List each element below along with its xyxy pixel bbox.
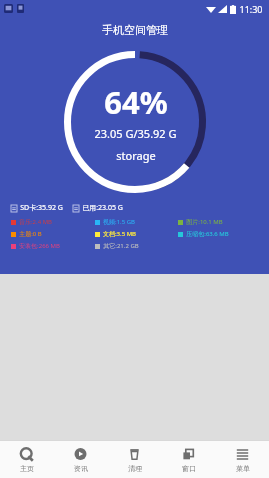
button[interactable]: 窗口 [161,441,215,478]
staticText: storage [116,148,156,163]
staticText: 图片:10.1 MB [186,218,223,226]
staticText: 压缩包:63.6 MB [186,230,229,238]
staticText: 音乐:2.4 MB [19,218,52,226]
staticText: 23.05 G/35.92 G [94,126,177,141]
staticText: 资讯 [74,464,88,473]
staticText: 菜单 [236,464,250,473]
staticText: 已用:23.05 G [82,203,123,213]
staticText: 安装包:266 MB [19,242,60,250]
staticText: 文档:3.5 MB [103,230,136,238]
staticText: 主题:0 B [19,230,42,238]
button[interactable]: 清理 [107,441,161,478]
staticText: 主页 [20,464,34,473]
staticText: 窗口 [182,464,196,473]
button[interactable]: 资讯 [53,441,107,478]
staticText: 11:30 [239,3,263,15]
staticText: 视频:1.5 GB [103,218,135,226]
staticText: SD卡:35.92 G [20,203,63,213]
button[interactable]: 菜单 [215,441,269,478]
staticText: 手机空间管理 [102,23,168,37]
staticText: 64% [104,81,168,123]
staticText: 清理 [128,464,142,473]
button[interactable]: 主页 [0,441,53,478]
staticText: 其它:21.2 GB [103,242,139,250]
